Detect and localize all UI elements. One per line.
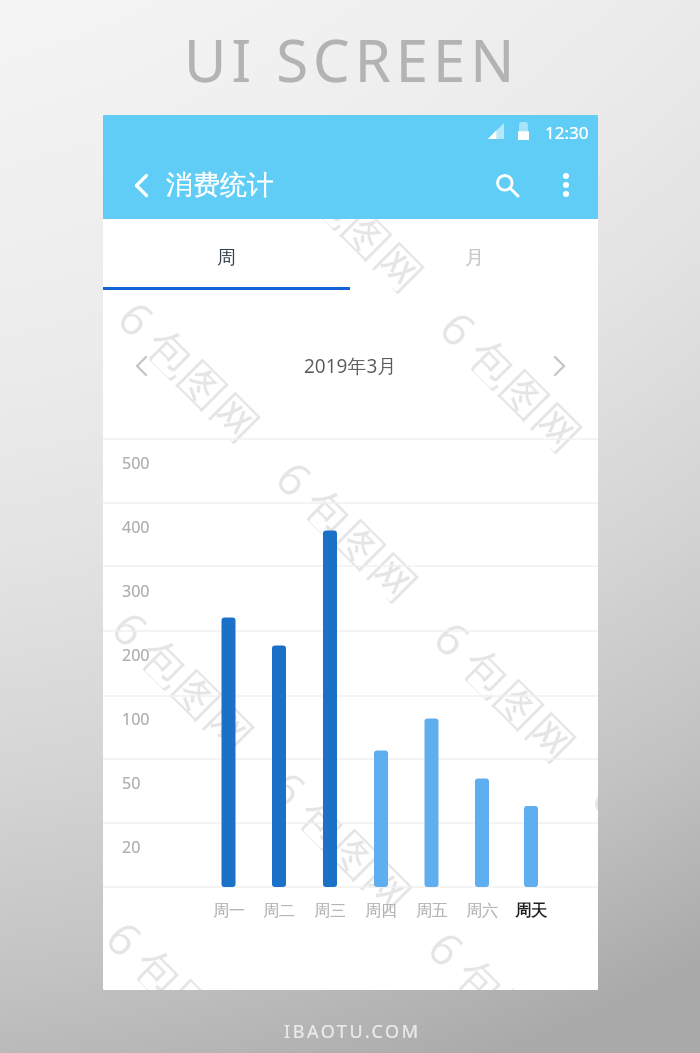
staticText: UI SCREEN <box>184 20 520 99</box>
staticText: 周三 <box>314 901 346 921</box>
staticText: 周 <box>217 246 236 270</box>
staticText: 2019年3月 <box>304 353 397 379</box>
staticText: 20 <box>122 836 141 858</box>
staticText: 6 包图网 <box>435 297 597 459</box>
staticText: 周四 <box>365 901 397 921</box>
staticText: 6 包图网 <box>423 917 585 990</box>
staticText: 6 包图网 <box>429 607 591 769</box>
button[interactable]: 月 <box>350 219 598 290</box>
staticText: 100 <box>122 708 150 730</box>
button[interactable]: Search <box>487 165 531 209</box>
button[interactable]: Back <box>126 165 156 205</box>
staticText: 6 包图网 <box>103 907 263 990</box>
staticText: 400 <box>122 516 150 538</box>
staticText: 200 <box>122 644 150 666</box>
staticText: 50 <box>122 772 141 794</box>
staticText: 300 <box>122 580 150 602</box>
button[interactable]: More options <box>546 165 586 205</box>
staticText: 6 包图网 <box>271 447 433 609</box>
staticText: 周二 <box>263 901 295 921</box>
staticText: 周六 <box>466 901 498 921</box>
staticText: 6 包图网 <box>441 115 598 149</box>
button[interactable]: Next month <box>544 346 575 386</box>
staticText: 6 包图网 <box>265 757 427 919</box>
staticText: 12:30 <box>545 121 589 144</box>
staticText: 周天 <box>515 901 547 921</box>
staticText: 消费统计 <box>166 168 274 198</box>
button[interactable]: Previous month <box>126 346 157 386</box>
staticText: 6 包图网 <box>113 287 275 449</box>
staticText: 6 包图网 <box>277 137 439 299</box>
staticText: 周一 <box>213 901 245 921</box>
staticText: 周五 <box>416 901 448 921</box>
staticText: 6 包图网 <box>587 767 598 929</box>
button[interactable]: 周 <box>103 219 350 290</box>
staticText: IBAOTU.COM <box>284 1019 421 1044</box>
staticText: 500 <box>122 452 150 474</box>
staticText: 6 包图网 <box>107 597 269 759</box>
staticText: 月 <box>465 246 484 270</box>
staticText: 6 包图网 <box>103 127 117 289</box>
